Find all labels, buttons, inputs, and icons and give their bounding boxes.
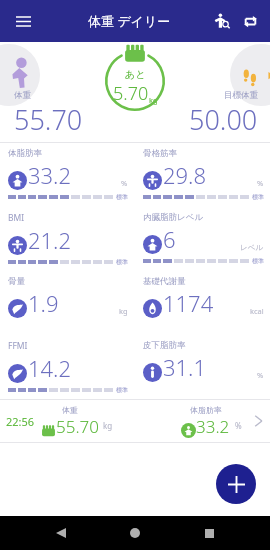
button[interactable]: 目標体重	[189, 90, 258, 138]
staticText: 体脂肪率	[190, 405, 222, 415]
staticText: kg	[119, 306, 128, 316]
staticText: 標準	[116, 258, 128, 266]
staticText: %	[257, 370, 264, 380]
staticText: 33.2	[28, 160, 72, 190]
staticText: 体脂肪率	[8, 148, 42, 159]
button[interactable]: Menu	[8, 6, 38, 36]
staticText: 標準	[252, 193, 264, 201]
button[interactable]: FFMI	[0, 335, 134, 394]
staticText: 骨格筋率	[143, 148, 177, 159]
button[interactable]: Find user	[208, 7, 236, 35]
staticText: 内臓脂肪レベル	[143, 212, 204, 223]
staticText: 50.00	[189, 101, 258, 138]
button[interactable]: Home	[122, 520, 148, 546]
staticText: 目標体重	[224, 90, 258, 101]
button[interactable]: Add record	[216, 464, 256, 504]
button[interactable]: あと	[102, 48, 168, 114]
staticText: kg	[149, 95, 158, 105]
staticText: 体重	[14, 90, 31, 101]
staticText: 21.2	[28, 225, 72, 255]
button[interactable]: 骨格筋率	[135, 143, 270, 201]
staticText: 標準	[116, 386, 128, 394]
button[interactable]: Next: steps	[230, 44, 270, 106]
staticText: 皮下脂肪率	[143, 340, 186, 351]
button[interactable]: Back	[48, 520, 74, 546]
button[interactable]: 22:56	[0, 400, 270, 442]
staticText: 体重	[62, 405, 78, 415]
staticText: 1174	[163, 288, 214, 318]
staticText: レベル	[240, 243, 264, 252]
button[interactable]: 骨量	[0, 271, 134, 325]
staticText: 33.2	[196, 415, 230, 438]
button[interactable]: Open details	[246, 409, 270, 433]
staticText: 骨量	[8, 276, 25, 287]
staticText: 標準	[252, 257, 264, 265]
staticText: 22:56	[6, 414, 35, 429]
button[interactable]: Previous: activity	[0, 44, 40, 106]
staticText: %	[235, 420, 242, 431]
staticText: 6	[163, 224, 176, 254]
button[interactable]: BMI	[0, 207, 134, 266]
staticText: 標準	[116, 193, 128, 201]
button[interactable]: Sync	[236, 7, 264, 35]
button[interactable]: 基礎代謝量	[135, 271, 270, 325]
staticText: 29.8	[163, 160, 207, 190]
button[interactable]: Recents	[196, 520, 222, 546]
staticText: 1.9	[28, 288, 59, 318]
staticText: 基礎代謝量	[143, 276, 186, 287]
staticText: 14.2	[28, 353, 72, 383]
button[interactable]: 内臓脂肪レベル	[135, 207, 270, 265]
button[interactable]: 体脂肪率	[0, 143, 134, 201]
staticText: 55.70	[14, 101, 83, 138]
staticText: あと	[125, 68, 146, 81]
staticText: BMI	[8, 212, 25, 224]
staticText: %	[257, 178, 264, 188]
button[interactable]: 体重	[14, 90, 83, 138]
staticText: %	[121, 178, 128, 188]
button[interactable]: 皮下脂肪率	[135, 335, 270, 389]
staticText: kcal	[250, 306, 264, 316]
staticText: kg	[103, 420, 113, 431]
staticText: 体重 デイリー	[88, 12, 171, 30]
staticText: 31.1	[163, 352, 207, 382]
staticText: 5.70	[113, 81, 149, 106]
staticText: FFMI	[8, 340, 28, 352]
staticText: 55.70	[56, 415, 99, 438]
